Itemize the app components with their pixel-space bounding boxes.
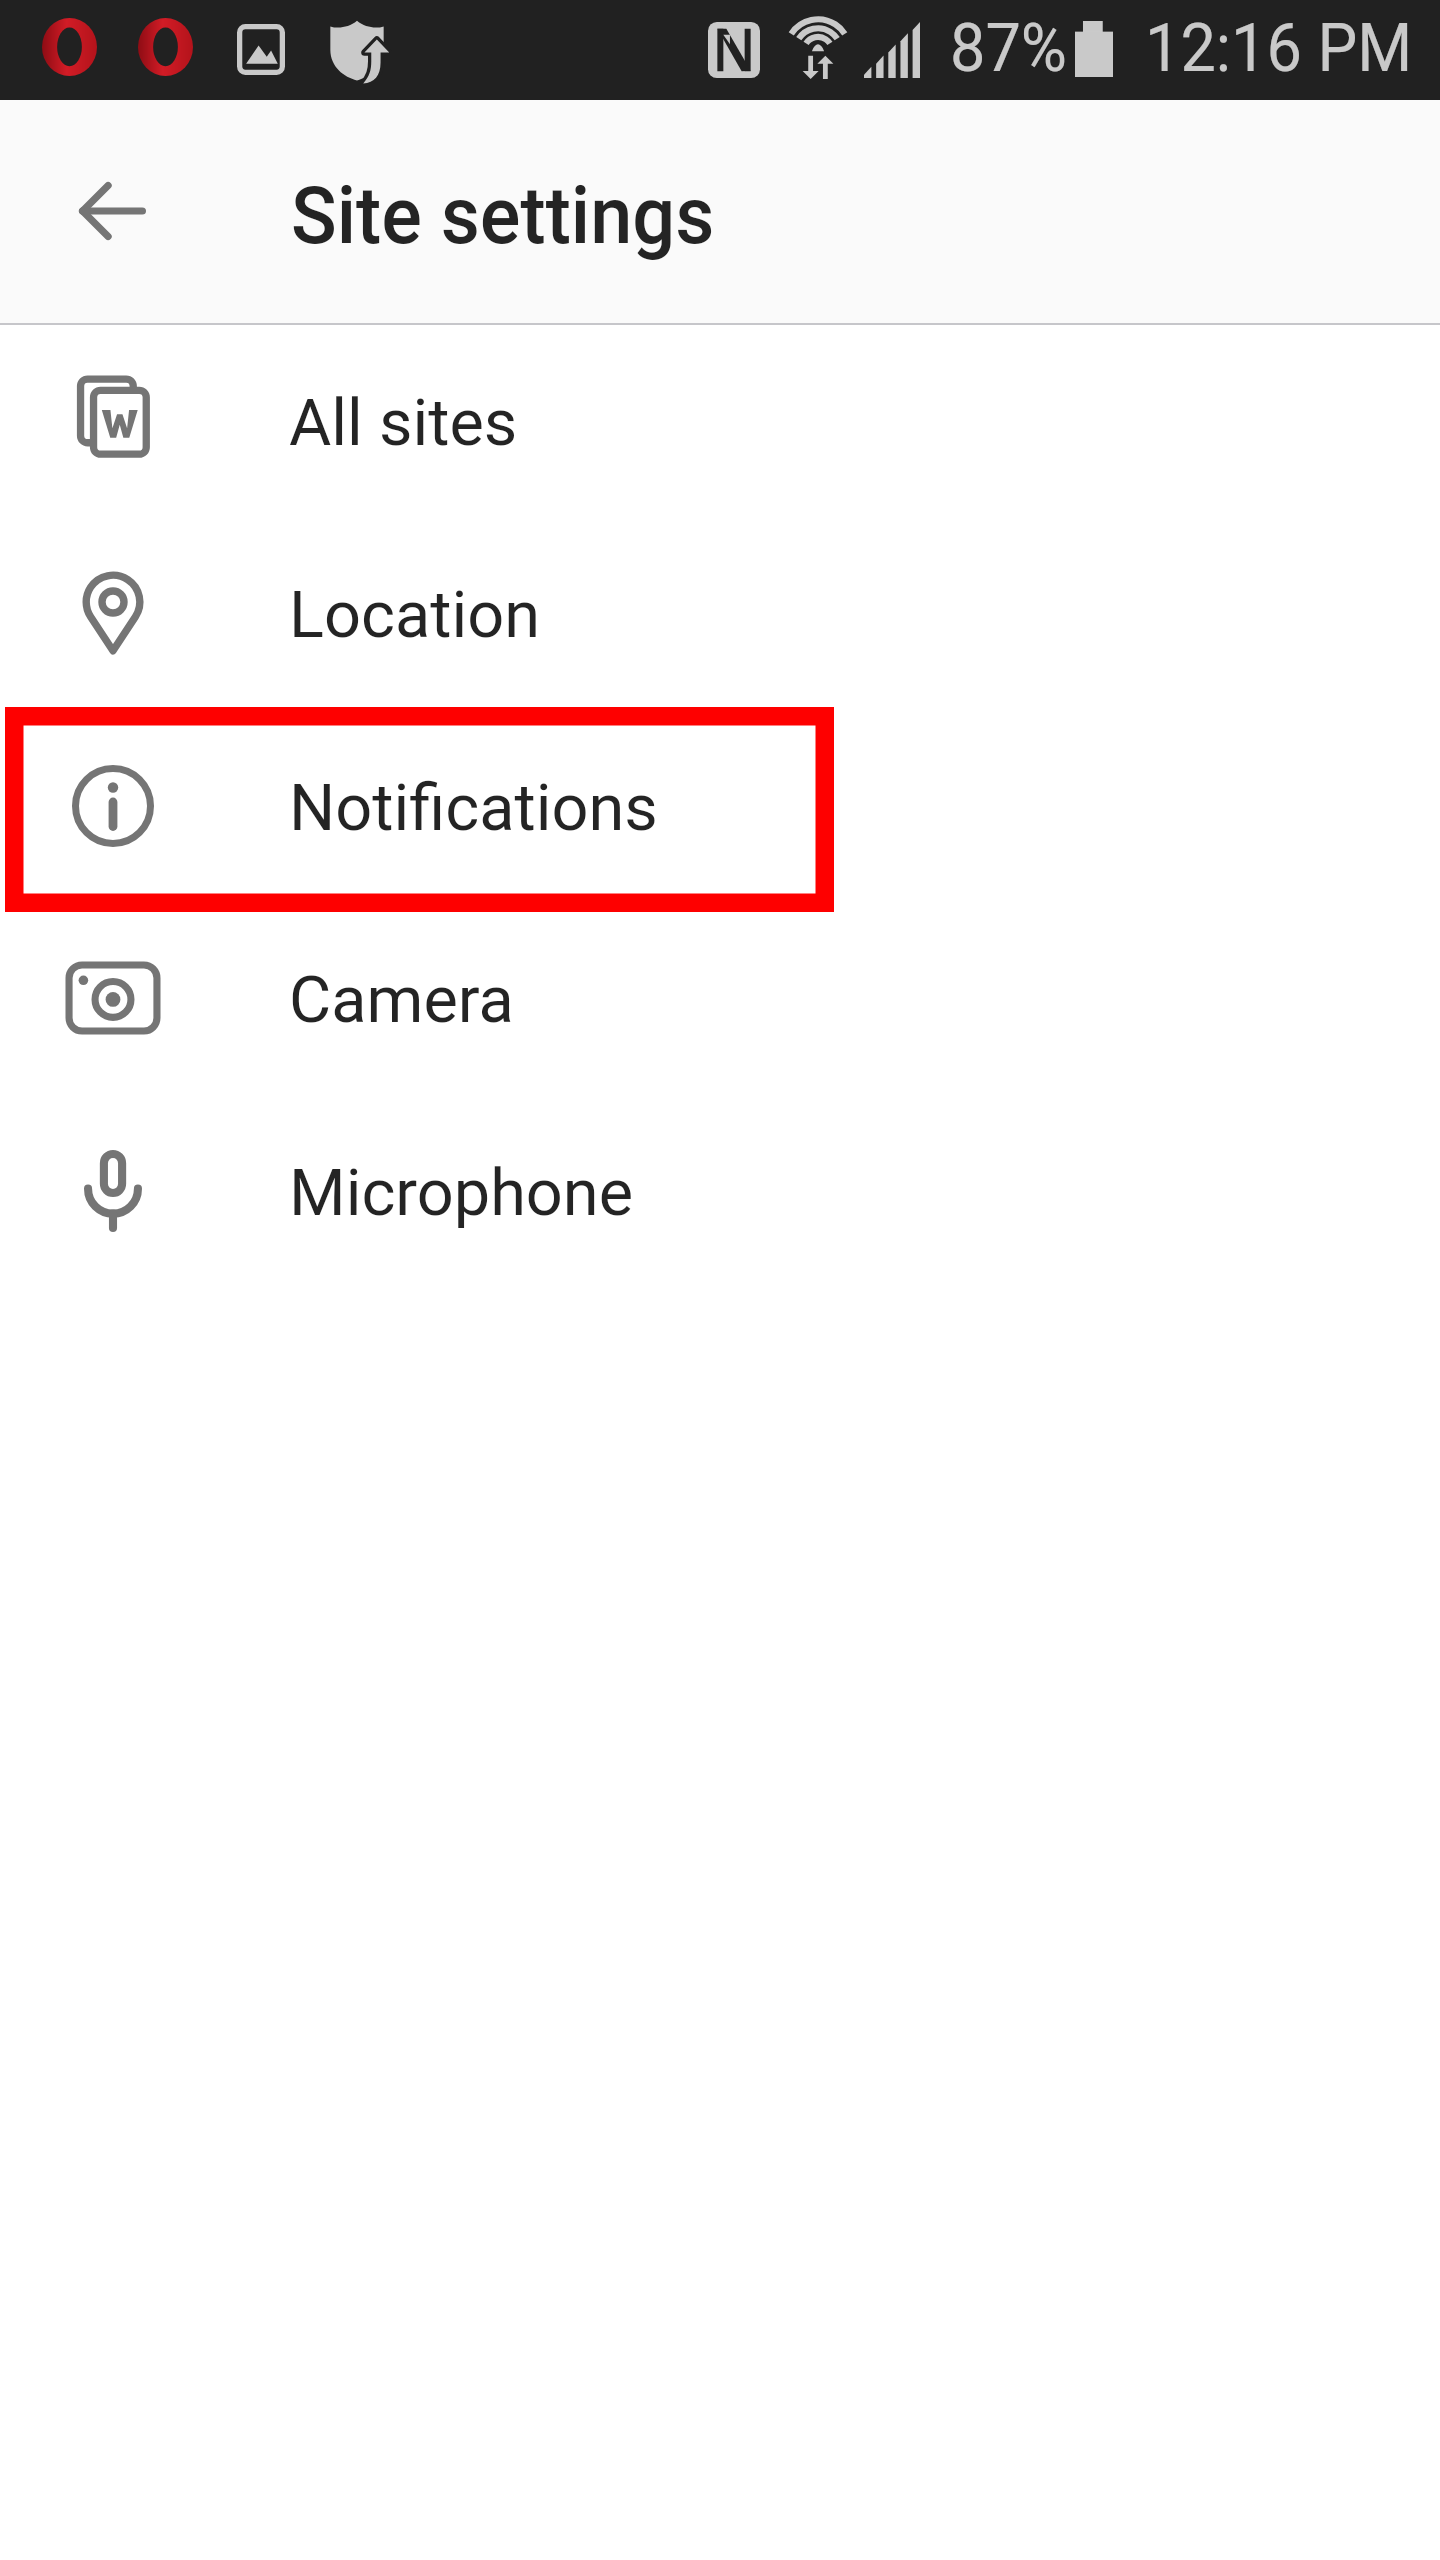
button[interactable]: All sites [0,325,1440,518]
staticText: 12:16 PM [1145,10,1412,87]
staticText: 87% [950,10,1067,87]
staticText: Location [289,577,540,653]
staticText: All sites [289,385,517,461]
button[interactable]: Navigate up [44,143,180,279]
staticText: Camera [289,962,514,1038]
staticText: Microphone [289,1155,633,1231]
staticText: Site settings [291,169,715,263]
button[interactable]: Location [0,517,1440,710]
button[interactable]: Microphone [0,1095,1440,1288]
button[interactable]: Notifications [0,710,1440,903]
button[interactable]: Camera [0,902,1440,1095]
staticText: Notifications [289,770,658,846]
